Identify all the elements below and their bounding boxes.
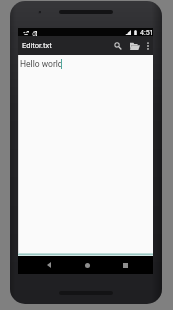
button[interactable]: Back bbox=[35, 256, 63, 274]
staticText: Editor.txt bbox=[22, 41, 52, 50]
button[interactable]: Recent apps bbox=[111, 256, 139, 274]
button[interactable]: More options bbox=[141, 36, 154, 55]
button[interactable]: Search bbox=[109, 36, 126, 55]
staticText: Hello world bbox=[20, 59, 63, 69]
button[interactable]: Open file bbox=[126, 36, 143, 55]
staticText: 4:51 bbox=[140, 29, 154, 37]
button[interactable]: Home bbox=[73, 256, 101, 274]
